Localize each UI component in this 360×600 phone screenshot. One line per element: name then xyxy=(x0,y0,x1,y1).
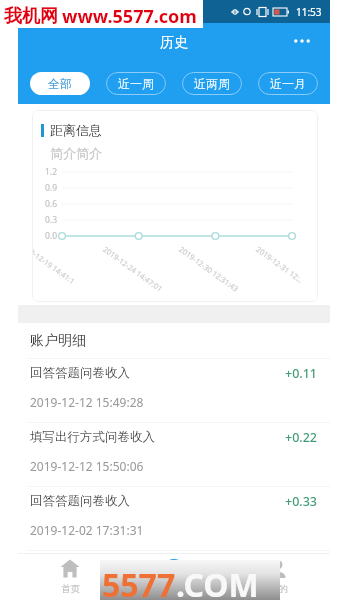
staticText: 2019-12-12 15:50:06 xyxy=(30,458,144,474)
staticText: 首页 xyxy=(61,583,80,595)
staticText: 距离信息 xyxy=(50,122,102,138)
staticText: 0.6 xyxy=(45,198,58,210)
staticText: 2019-12-24 14:47:01 xyxy=(101,244,164,294)
staticText: 简介简介 xyxy=(50,145,102,161)
staticText: www.5577.com xyxy=(62,4,197,29)
staticText: 近两周 xyxy=(194,76,230,91)
button[interactable]: 填写出行方式问卷收入 xyxy=(18,422,330,486)
staticText: 2019-12-30 12:31:43 xyxy=(177,244,240,294)
staticText: +0.33 xyxy=(285,493,318,510)
staticText: 账户明细 xyxy=(30,332,86,350)
button[interactable]: 我的 xyxy=(226,554,330,600)
button[interactable]: 回答答题问卷收入 xyxy=(18,486,330,550)
staticText: 0.0 xyxy=(45,230,58,242)
staticText: 2019-12-02 17:31:31 xyxy=(30,522,144,538)
staticText: 19-12-19 14:41:1 xyxy=(32,244,77,286)
staticText: .COM xyxy=(176,563,259,600)
staticText: 2019-12-12 15:49:28 xyxy=(30,394,144,410)
staticText: 11:53 xyxy=(296,5,322,19)
staticText: 2019-12-31 12:.. xyxy=(254,244,305,285)
button[interactable]: 全部 xyxy=(30,72,90,95)
button[interactable]: 近一月 xyxy=(258,72,318,95)
staticText: 5577 xyxy=(102,563,176,600)
button[interactable]: More options xyxy=(289,29,315,53)
staticText: 历史 xyxy=(165,583,184,595)
button[interactable]: 回答答题问卷收入 xyxy=(18,358,330,422)
staticText: 1.2 xyxy=(45,166,58,178)
staticText: 全部 xyxy=(48,76,72,91)
staticText: +0.22 xyxy=(285,429,318,446)
staticText: 我的 xyxy=(269,583,288,595)
staticText: 近一周 xyxy=(118,76,154,91)
staticText: 历史 xyxy=(160,34,188,52)
staticText: 回答答题问卷收入 xyxy=(30,493,130,509)
staticText: 我机网 xyxy=(4,5,58,28)
button[interactable]: 首页 xyxy=(18,554,122,600)
button[interactable]: 近一周 xyxy=(106,72,166,95)
staticText: 近一月 xyxy=(270,76,306,91)
button[interactable]: 近两周 xyxy=(182,72,242,95)
staticText: 填写出行方式问卷收入 xyxy=(30,429,155,445)
staticText: 0.9 xyxy=(45,182,58,194)
staticText: 0.3 xyxy=(45,214,58,226)
button[interactable]: 历史 xyxy=(122,554,226,600)
staticText: +0.11 xyxy=(285,365,318,382)
staticText: 回答答题问卷收入 xyxy=(30,365,130,381)
